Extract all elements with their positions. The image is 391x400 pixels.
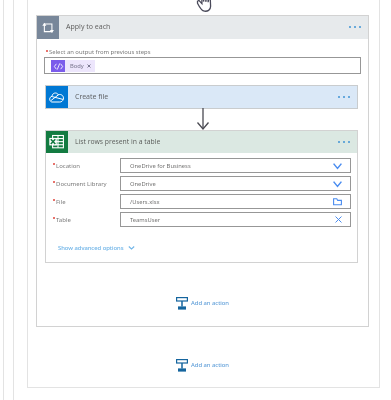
other: Open Document Library dropdown <box>333 181 342 187</box>
other: Clear <box>87 64 91 68</box>
other: More commands <box>338 96 350 98</box>
staticText: Document Library <box>56 180 107 188</box>
staticText: Create file <box>75 92 109 102</box>
button[interactable]: OneDrive for Business <box>120 158 351 173</box>
button[interactable]: Body <box>44 57 361 74</box>
button[interactable]: TeamsUser <box>120 212 351 227</box>
staticText: OneDrive <box>130 180 156 188</box>
staticText: Add an action <box>191 361 230 369</box>
staticText: Body <box>70 62 84 70</box>
button[interactable]: OneDrive <box>120 176 351 191</box>
other: More commands <box>338 141 350 143</box>
other: More commands <box>349 26 361 28</box>
staticText: Show advanced options <box>58 244 124 252</box>
staticText: /Users.xlsx <box>130 198 160 206</box>
button[interactable]: Show advanced options <box>58 242 135 253</box>
staticText: List rows present in a table <box>75 137 161 146</box>
button[interactable]: Add an action <box>176 296 230 310</box>
other: Open Location dropdown <box>333 163 342 169</box>
button[interactable]: List rows present in a table <box>45 130 358 153</box>
button[interactable]: /Users.xlsx <box>120 194 351 209</box>
staticText: TeamsUser <box>130 216 161 224</box>
button[interactable]: Apply to each <box>36 15 369 39</box>
button[interactable]: Create file <box>45 85 358 109</box>
staticText: OneDrive for Business <box>130 162 191 170</box>
staticText: Location <box>56 162 81 170</box>
staticText: Table <box>56 216 71 224</box>
staticText: Add an action <box>191 299 230 307</box>
other: Clear <box>335 216 342 223</box>
other: Browse files <box>333 197 342 206</box>
staticText: Apply to each <box>66 22 111 32</box>
staticText: File <box>56 198 66 206</box>
button[interactable]: Add an action <box>176 358 230 372</box>
staticText: Select an output from previous steps <box>49 48 151 56</box>
